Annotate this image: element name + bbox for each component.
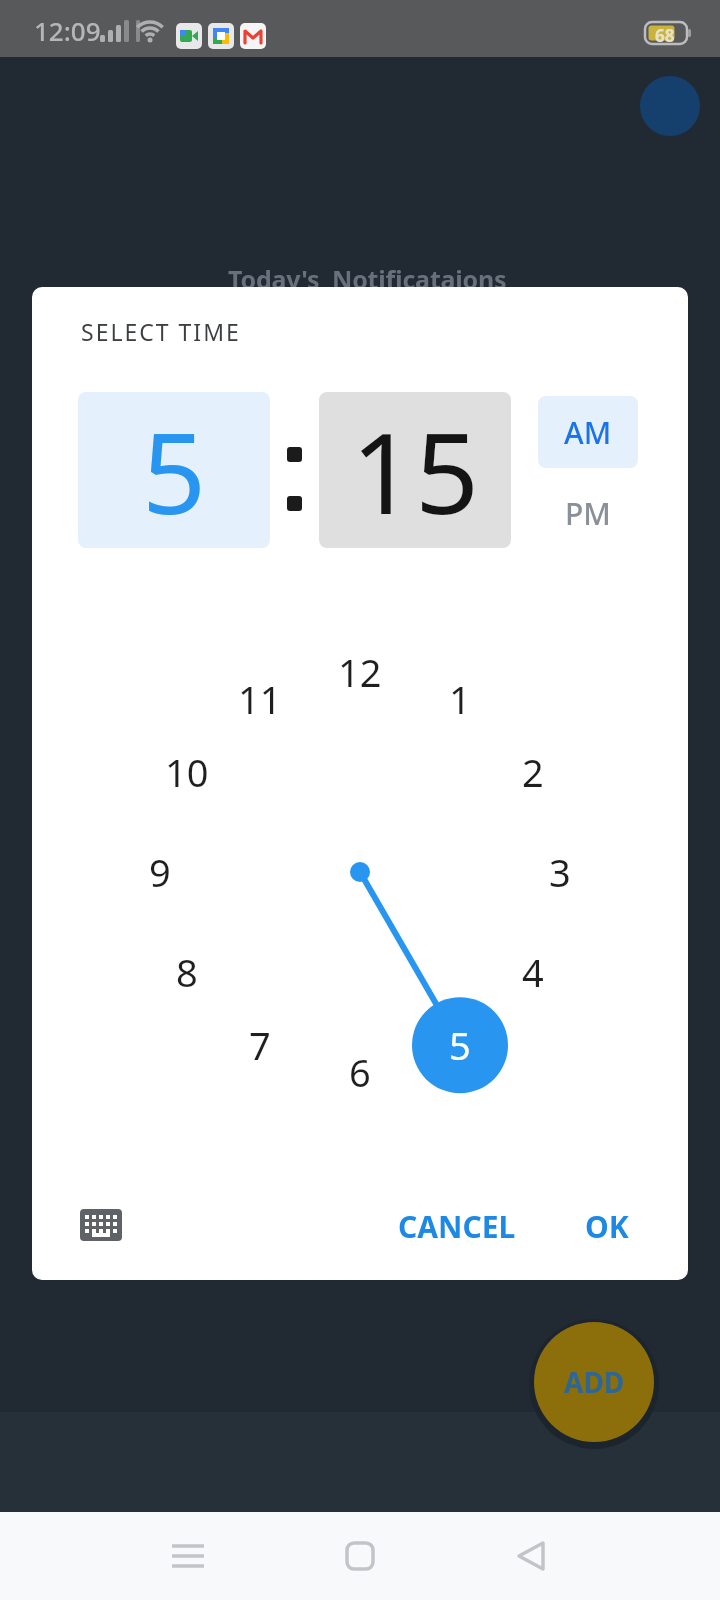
staticText: PM [565,493,611,534]
button[interactable]: CANCEL [392,1197,522,1255]
button[interactable] [640,76,700,136]
button[interactable] [330,1526,390,1586]
staticText: CANCEL [398,1206,516,1247]
staticText: 5 [142,394,207,547]
staticText: 2 [522,746,544,798]
staticText: 1 [449,673,471,725]
button[interactable]: 6 [312,1024,408,1120]
staticText: 5 [449,1019,471,1071]
button[interactable] [76,1203,126,1247]
staticText: 7 [249,1019,271,1071]
staticText: 4 [522,946,544,998]
button[interactable]: PM [538,477,638,549]
button[interactable]: OK [562,1197,652,1255]
staticText: 10 [165,746,209,798]
button[interactable]: 9 [112,824,208,920]
staticText: OK [585,1206,629,1247]
button[interactable]: 8 [139,924,235,1020]
button[interactable]: 10 [139,724,235,820]
button[interactable]: 1 [412,651,508,747]
button[interactable]: 5 [412,997,508,1093]
button[interactable]: 2 [485,724,581,820]
button[interactable]: 11 [212,651,308,747]
staticText: Today's Notificataions [228,262,507,296]
button[interactable]: AM [538,396,638,468]
button[interactable]: 15 [319,392,511,548]
button[interactable]: 7 [212,997,308,1093]
staticText: 9 [149,846,171,898]
button[interactable]: 12 [312,624,408,720]
button[interactable]: ADD [534,1322,654,1442]
button[interactable] [501,1526,561,1586]
staticText: 15 [351,394,480,547]
staticText: 68 [655,24,675,47]
staticText: AM [564,412,612,453]
button[interactable] [158,1526,218,1586]
button[interactable]: 3 [512,824,608,920]
staticText: 3 [549,846,571,898]
staticText: ADD [564,1363,625,1401]
button[interactable]: 5 [78,392,270,548]
staticText: 11 [238,673,282,725]
staticText: 12:09 [34,13,101,48]
button[interactable]: 4 [485,924,581,1020]
staticText: SELECT TIME [81,316,241,347]
staticText: 12 [338,646,382,698]
staticText: 8 [176,946,198,998]
staticText: 6 [349,1046,371,1098]
